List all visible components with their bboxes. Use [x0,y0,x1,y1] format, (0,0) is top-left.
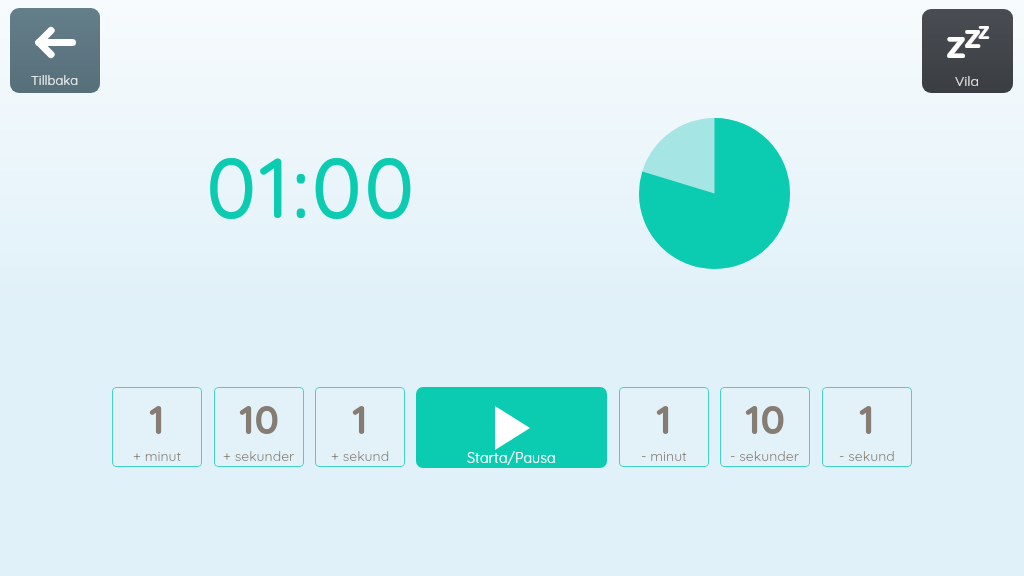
staticText: 01:00 [206,134,417,239]
button[interactable]: 1 [315,387,405,467]
staticText: 1 [149,394,165,444]
button[interactable]: Starta/Pausa [416,387,607,468]
button[interactable]: 10 [720,387,810,467]
staticText: 1 [656,394,672,444]
staticText: 10 [745,394,786,444]
staticText: + sekunder [223,447,295,465]
button[interactable]: Vila [922,9,1013,93]
button[interactable]: 1 [112,387,202,467]
staticText: Tillbaka [31,72,79,88]
staticText: - sekunder [730,447,800,465]
staticText: + minut [133,447,182,465]
staticText: z [946,17,966,68]
staticText: z [964,13,981,57]
staticText: + sekund [331,447,390,465]
button[interactable]: 10 [214,387,304,467]
staticText: Vila [955,72,980,90]
staticText: z [978,15,990,45]
staticText: 1 [352,394,368,444]
staticText: - minut [641,447,687,465]
staticText: Starta/Pausa [467,449,556,467]
button[interactable]: 1 [619,387,709,467]
button[interactable]: 1 [822,387,912,467]
staticText: - sekund [839,447,895,465]
staticText: 10 [239,394,280,444]
staticText: 1 [859,394,875,444]
button[interactable]: Tillbaka [10,8,100,93]
